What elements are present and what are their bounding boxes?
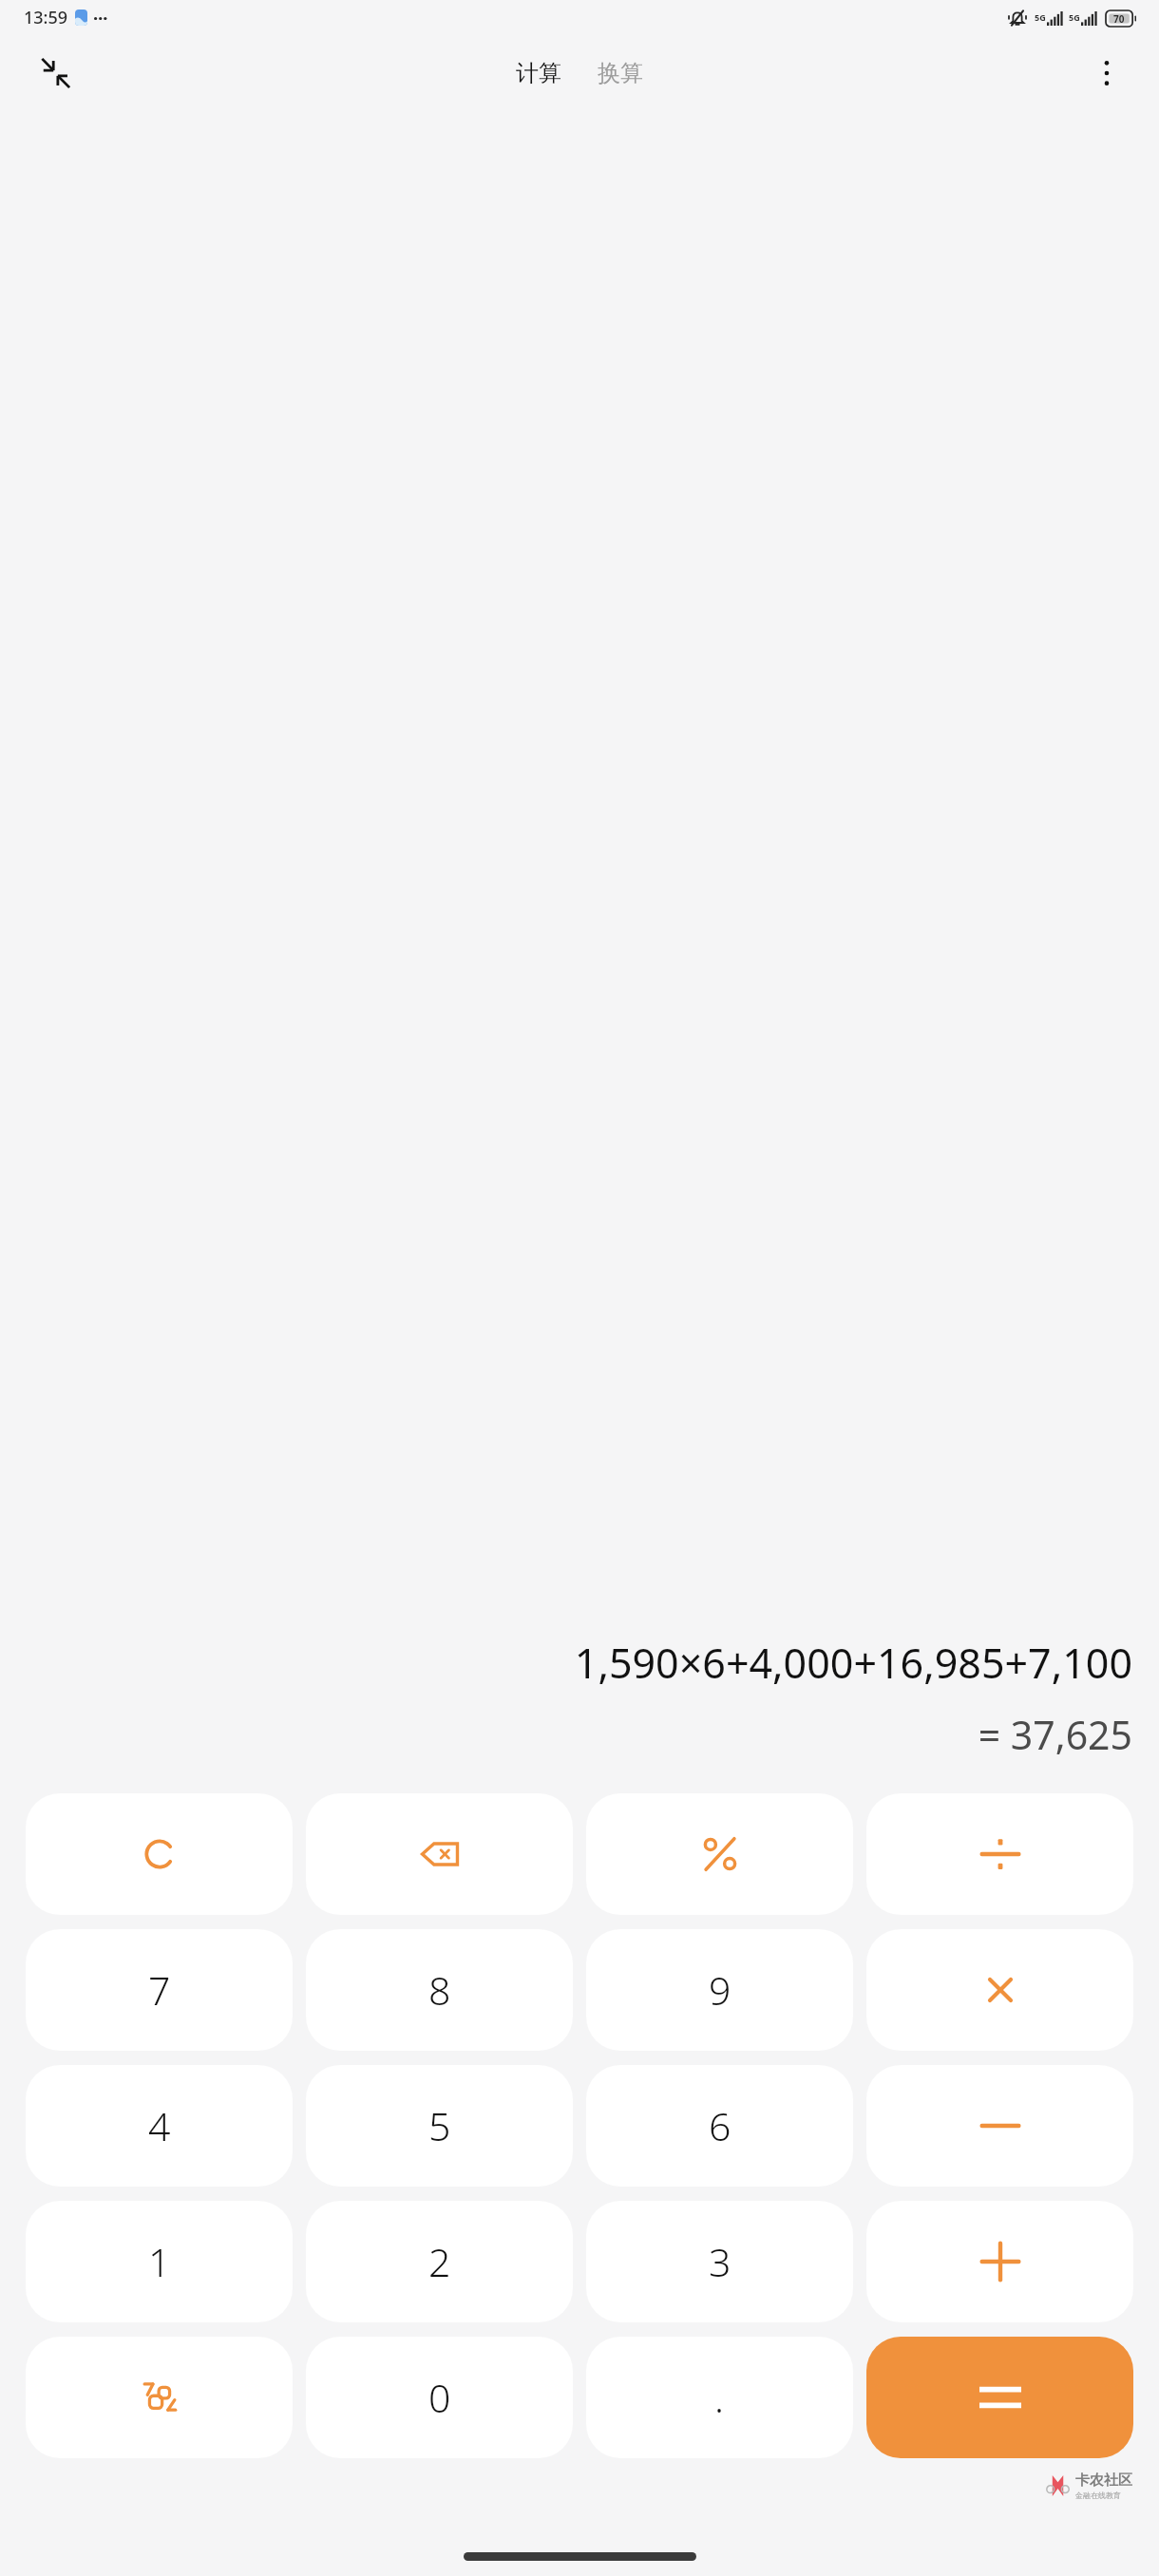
staticText: 0 [428,2371,451,2424]
button[interactable]: Collapse [25,43,85,104]
staticText: 卡农社区 [1075,2472,1132,2490]
button[interactable]: Multiply [866,1929,1133,2051]
button[interactable]: . [586,2337,853,2458]
button[interactable]: 4 [26,2065,293,2187]
button[interactable]: More options [1079,46,1134,101]
button[interactable]: 6 [586,2065,853,2187]
staticText: 13:59 [24,6,68,29]
button[interactable]: Plus [866,2201,1133,2322]
staticText: 9 [709,1963,731,2017]
staticText: 8 [428,1963,451,2017]
button[interactable]: 计算 [508,53,569,93]
staticText: 1,590×6+4,000+16,985+7,100 [574,1635,1132,1691]
staticText: 4 [148,2099,171,2152]
staticText: 5G [1035,11,1046,23]
button[interactable]: Minus [866,2065,1133,2187]
staticText: . [714,2371,725,2424]
staticText: 3 [709,2235,731,2288]
button[interactable]: 0 [306,2337,573,2458]
staticText: 6 [709,2099,731,2152]
button[interactable]: 1 [26,2201,293,2322]
button[interactable]: 3 [586,2201,853,2322]
button[interactable]: 换算 [590,53,651,93]
staticText: 70 [1113,12,1125,26]
staticText: 计算 [516,59,561,87]
staticText: = 37,625 [978,1708,1132,1761]
button[interactable]: Equals [866,2337,1133,2458]
button[interactable]: Divide [866,1793,1133,1915]
staticText: 5G [1069,11,1080,23]
staticText: 金融在线教育 [1075,2491,1121,2500]
staticText: 5 [428,2099,451,2152]
button[interactable]: 2 [306,2201,573,2322]
staticText: 换算 [598,59,643,87]
button[interactable]: Clear [26,1793,293,1915]
button[interactable]: 7 [26,1929,293,2051]
staticText: 2 [428,2235,451,2288]
button[interactable]: Backspace [306,1793,573,1915]
button[interactable]: 5 [306,2065,573,2187]
button[interactable]: 9 [586,1929,853,2051]
button[interactable]: 8 [306,1929,573,2051]
staticText: 1 [148,2235,171,2288]
button[interactable]: Scientific mode [26,2337,293,2458]
button[interactable]: Percent [586,1793,853,1915]
staticText: 7 [148,1963,171,2017]
